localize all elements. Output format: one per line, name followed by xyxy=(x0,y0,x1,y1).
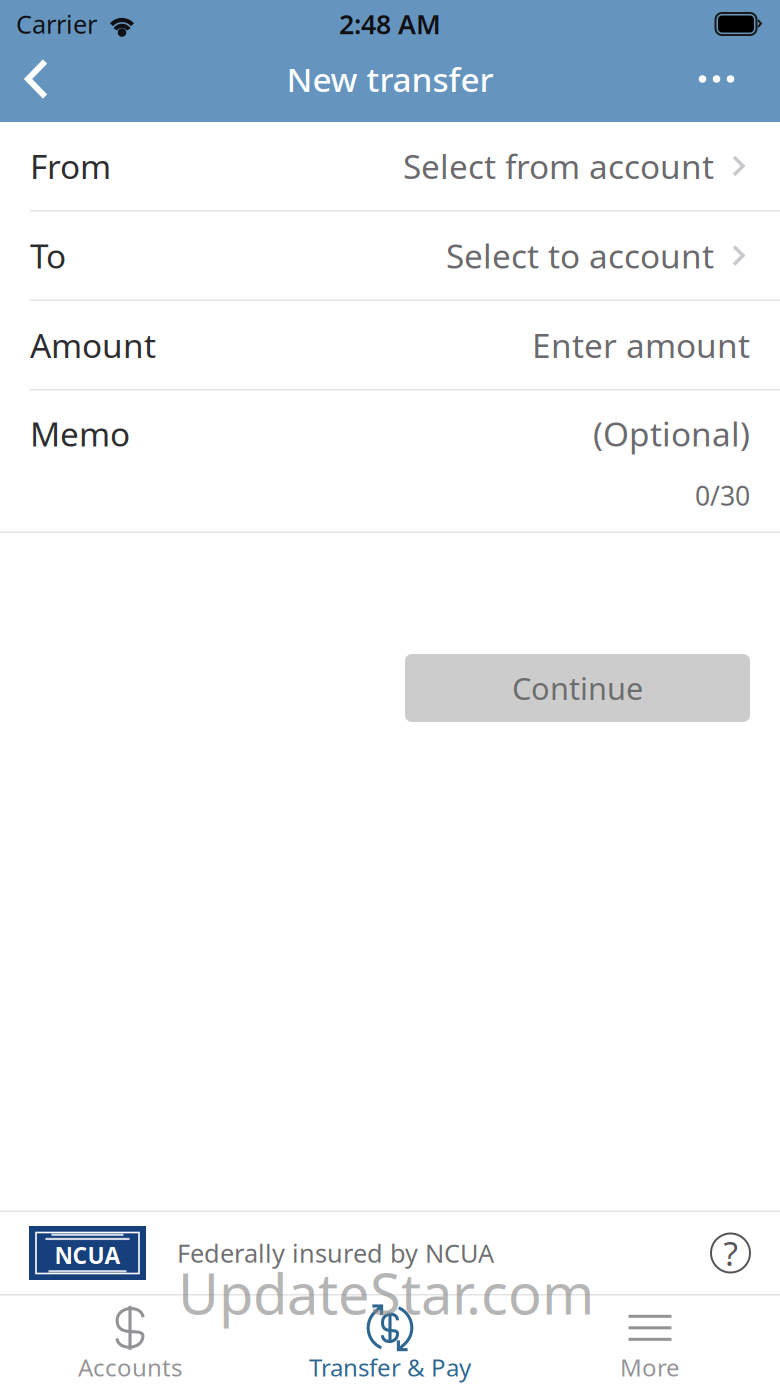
staticText: Enter amount xyxy=(532,323,750,367)
button[interactable]: To xyxy=(0,211,780,299)
staticText: Memo xyxy=(30,411,130,456)
staticText: From xyxy=(30,144,111,188)
button[interactable]: Amount xyxy=(0,301,780,389)
staticText: New transfer xyxy=(286,57,493,101)
staticText: 2:48 AM xyxy=(339,6,441,42)
button[interactable]: Back xyxy=(0,48,77,110)
button[interactable]: Memo xyxy=(0,390,780,531)
staticText: UpdateStar.com xyxy=(178,1256,594,1330)
button[interactable]: Transfer & Pay xyxy=(260,1295,520,1387)
staticText: Continue xyxy=(512,668,643,708)
staticText: To xyxy=(30,233,66,278)
staticText: (Optional) xyxy=(593,411,750,456)
staticText: Select to account xyxy=(446,233,714,278)
staticText: 0/30 xyxy=(695,478,750,513)
staticText: NCUA xyxy=(54,1240,120,1270)
staticText: Transfer & Pay xyxy=(309,1351,471,1383)
button[interactable]: Accounts xyxy=(0,1295,260,1387)
button[interactable]: More actions xyxy=(671,48,780,110)
staticText: Federally insured by NCUA xyxy=(177,1236,494,1270)
button[interactable]: More xyxy=(520,1295,780,1387)
staticText: ? xyxy=(723,1231,737,1275)
staticText: More xyxy=(620,1351,680,1383)
button[interactable]: From xyxy=(0,122,780,210)
button[interactable]: Help xyxy=(711,1233,750,1272)
button[interactable]: Continue xyxy=(405,654,750,722)
staticText: Carrier xyxy=(16,7,97,41)
staticText: Amount xyxy=(30,323,156,367)
staticText: Accounts xyxy=(78,1351,182,1383)
staticText: Select from account xyxy=(403,144,714,188)
